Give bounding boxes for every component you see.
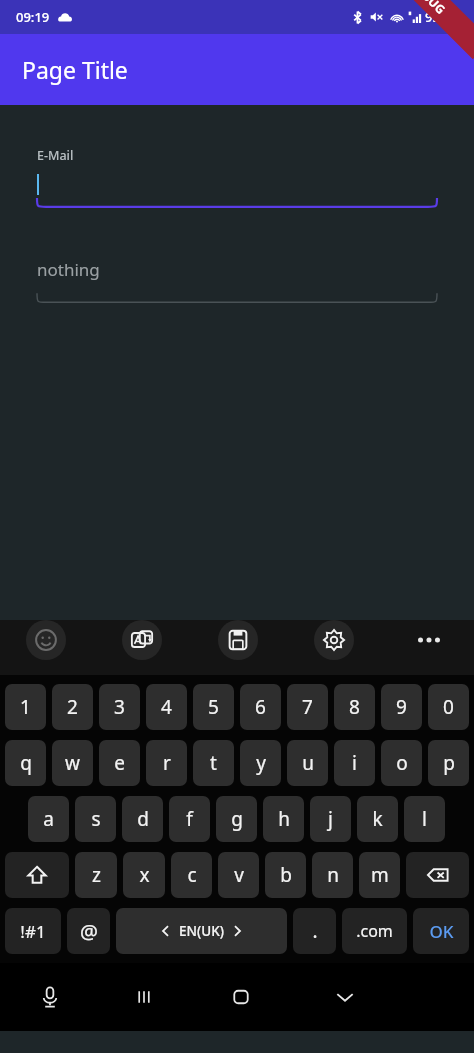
staticText: .: [312, 918, 318, 944]
button[interactable]: 1: [5, 684, 46, 730]
staticText: y: [256, 750, 266, 776]
staticText: j: [328, 806, 333, 832]
button[interactable]: @: [67, 908, 110, 954]
staticText: a: [43, 806, 54, 832]
button[interactable]: Backspace: [406, 852, 469, 898]
staticText: n: [327, 862, 339, 888]
button[interactable]: z: [75, 852, 117, 898]
button[interactable]: f: [169, 796, 210, 842]
staticText: k: [372, 806, 383, 832]
button[interactable]: 6: [240, 684, 281, 730]
staticText: b: [280, 862, 292, 888]
button[interactable]: Emoji: [26, 620, 66, 660]
button[interactable]: p: [428, 740, 469, 786]
staticText: o: [396, 750, 408, 776]
button[interactable]: Settings: [314, 620, 354, 660]
button[interactable]: Shift: [5, 852, 69, 898]
button[interactable]: l: [404, 796, 445, 842]
button[interactable]: a: [28, 796, 69, 842]
button[interactable]: i: [334, 740, 375, 786]
staticText: 93%: [425, 8, 451, 26]
button[interactable]: !#1: [5, 908, 61, 954]
button[interactable]: Voice input: [0, 963, 99, 1031]
button[interactable]: e: [99, 740, 140, 786]
button[interactable]: 5: [193, 684, 234, 730]
button[interactable]: j: [310, 796, 351, 842]
button[interactable]: .: [293, 908, 336, 954]
button[interactable]: 4: [146, 684, 187, 730]
staticText: p: [443, 750, 455, 776]
button[interactable]: OK: [413, 908, 469, 954]
staticText: OK: [429, 920, 454, 943]
staticText: 1: [20, 694, 31, 720]
staticText: 3: [114, 694, 125, 720]
staticText: i: [352, 750, 357, 776]
staticText: 6: [255, 694, 266, 720]
button[interactable]: d: [122, 796, 163, 842]
button[interactable]: nothing: [37, 254, 437, 303]
button[interactable]: x: [123, 852, 165, 898]
staticText: e: [114, 750, 125, 776]
button[interactable]: m: [359, 852, 400, 898]
button[interactable]: h: [263, 796, 304, 842]
staticText: Page Title: [22, 54, 128, 85]
button[interactable]: Hide keyboard: [293, 963, 397, 1031]
staticText: h: [278, 806, 290, 832]
staticText: 4: [161, 694, 172, 720]
button[interactable]: w: [52, 740, 93, 786]
button[interactable]: v: [218, 852, 259, 898]
button[interactable]: 7: [287, 684, 328, 730]
staticText: nothing: [37, 258, 100, 281]
button[interactable]: Clipboard: [218, 620, 258, 660]
button[interactable]: Recent apps: [99, 963, 189, 1031]
button[interactable]: E-Mail: [37, 147, 437, 208]
button[interactable]: .com: [342, 908, 407, 954]
button[interactable]: g: [216, 796, 257, 842]
button[interactable]: c: [171, 852, 212, 898]
button[interactable]: r: [146, 740, 187, 786]
button[interactable]: 9: [381, 684, 422, 730]
staticText: x: [139, 862, 150, 888]
staticText: r: [163, 750, 171, 776]
button[interactable]: y: [240, 740, 281, 786]
staticText: w: [65, 750, 80, 776]
button[interactable]: More options: [410, 621, 448, 659]
staticText: z: [92, 862, 101, 888]
staticText: s: [91, 806, 101, 832]
staticText: c: [187, 862, 197, 888]
button[interactable]: b: [265, 852, 306, 898]
button[interactable]: s: [75, 796, 116, 842]
staticText: q: [20, 750, 32, 776]
staticText: d: [137, 806, 149, 832]
staticText: 2: [67, 694, 78, 720]
button[interactable]: t: [193, 740, 234, 786]
staticText: 5: [208, 694, 219, 720]
button[interactable]: Translate: [122, 620, 162, 660]
staticText: 0: [443, 694, 454, 720]
staticText: v: [234, 862, 244, 888]
staticText: DEBUG: [408, 0, 449, 17]
button[interactable]: o: [381, 740, 422, 786]
button[interactable]: 8: [334, 684, 375, 730]
staticText: 9: [396, 694, 407, 720]
staticText: 8: [349, 694, 360, 720]
staticText: u: [302, 750, 314, 776]
button[interactable]: 3: [99, 684, 140, 730]
staticText: l: [422, 806, 427, 832]
button[interactable]: u: [287, 740, 328, 786]
staticText: E-Mail: [37, 147, 74, 164]
button[interactable]: q: [5, 740, 46, 786]
button[interactable]: 0: [428, 684, 469, 730]
staticText: @: [80, 918, 98, 945]
button[interactable]: Space, EN(UK): [116, 908, 287, 954]
staticText: 7: [302, 694, 313, 720]
staticText: m: [371, 862, 389, 888]
button[interactable]: n: [312, 852, 353, 898]
staticText: !#1: [20, 920, 46, 943]
button[interactable]: Home: [189, 963, 293, 1031]
button[interactable]: k: [357, 796, 398, 842]
button[interactable]: 2: [52, 684, 93, 730]
staticText: g: [231, 806, 243, 832]
staticText: .com: [356, 920, 393, 942]
staticText: f: [186, 806, 193, 832]
